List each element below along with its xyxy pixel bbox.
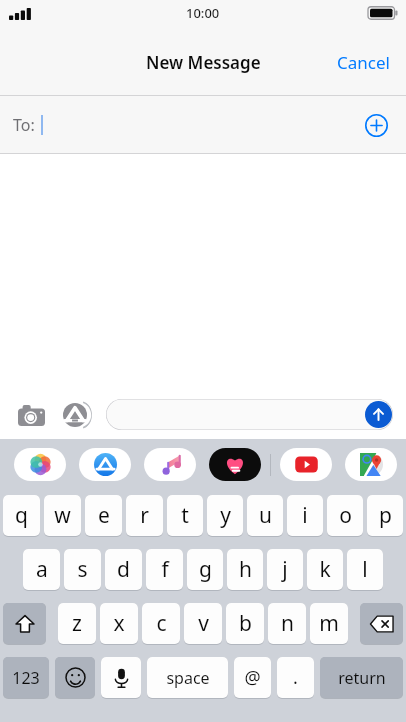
button[interactable]: r <box>126 495 163 536</box>
staticText: 10:00 <box>186 4 220 22</box>
button[interactable]: w <box>44 495 81 536</box>
button[interactable]: Digital Touch <box>209 448 261 481</box>
button[interactable]: y <box>207 495 243 536</box>
button[interactable]: App Store <box>79 448 131 481</box>
staticText: x <box>113 609 125 638</box>
staticText: r <box>140 501 149 530</box>
button[interactable]: n <box>268 603 306 644</box>
button[interactable]: space <box>147 657 228 698</box>
staticText: t <box>181 501 189 530</box>
button[interactable]: o <box>327 495 363 536</box>
staticText: space <box>166 667 210 689</box>
staticText: h <box>239 555 252 584</box>
button[interactable]: t <box>167 495 203 536</box>
staticText: e <box>98 501 110 530</box>
button[interactable]: Add contact <box>359 108 393 142</box>
button[interactable]: YouTube <box>280 448 332 481</box>
button[interactable]: s <box>64 549 101 590</box>
staticText: w <box>54 501 71 530</box>
button[interactable]: b <box>226 603 264 644</box>
staticText: b <box>239 609 252 638</box>
button[interactable]: m <box>310 603 348 644</box>
staticText: m <box>319 609 339 638</box>
button[interactable]: return <box>320 657 403 698</box>
button[interactable]: g <box>187 549 223 590</box>
staticText: l <box>362 555 368 584</box>
button[interactable]: Emoji <box>55 657 95 698</box>
staticText: . <box>293 665 298 690</box>
button[interactable]: Cancel <box>321 43 406 82</box>
button[interactable]: Send <box>365 401 392 428</box>
staticText: p <box>379 501 392 530</box>
button[interactable]: z <box>58 603 96 644</box>
button[interactable]: l <box>347 549 383 590</box>
button[interactable]: at sign <box>234 657 271 698</box>
button[interactable]: x <box>100 603 138 644</box>
button[interactable]: q <box>3 495 40 536</box>
button[interactable]: Numbers <box>3 657 49 698</box>
button[interactable]: h <box>227 549 263 590</box>
button[interactable]: c <box>142 603 180 644</box>
staticText: z <box>72 609 82 638</box>
staticText: c <box>156 609 167 638</box>
button[interactable]: j <box>267 549 303 590</box>
staticText: o <box>339 501 352 530</box>
staticText: q <box>15 501 28 530</box>
staticText: 123 <box>12 667 40 689</box>
staticText: return <box>338 667 386 689</box>
button[interactable]: i <box>287 495 323 536</box>
button[interactable]: u <box>247 495 283 536</box>
button[interactable]: p <box>367 495 403 536</box>
staticText: a <box>36 555 48 584</box>
staticText: Cancel <box>337 51 390 74</box>
button[interactable]: f <box>146 549 183 590</box>
staticText: d <box>117 555 130 584</box>
button[interactable]: Dictate <box>101 657 141 698</box>
staticText: s <box>77 555 88 584</box>
staticText: v <box>198 609 209 638</box>
staticText: j <box>282 555 288 584</box>
button[interactable]: v <box>184 603 222 644</box>
button[interactable]: Photos <box>14 448 66 481</box>
button[interactable]: a <box>23 549 60 590</box>
staticText: g <box>199 555 212 584</box>
button[interactable]: Maps <box>345 448 397 481</box>
button[interactable]: To: <box>0 96 406 153</box>
staticText: To: <box>13 114 35 136</box>
staticText: u <box>259 501 272 530</box>
staticText: n <box>281 609 294 638</box>
button[interactable]: Delete <box>360 603 403 644</box>
staticText: y <box>220 501 231 530</box>
button[interactable]: d <box>105 549 142 590</box>
button[interactable]: e <box>85 495 122 536</box>
staticText: @ <box>244 665 261 690</box>
button[interactable]: Send <box>106 399 393 430</box>
button[interactable]: Music <box>144 448 196 481</box>
staticText: i <box>302 501 308 530</box>
staticText: k <box>319 555 331 584</box>
button[interactable]: Shift <box>3 603 46 644</box>
button[interactable]: k <box>307 549 343 590</box>
staticText: New Message <box>146 51 261 74</box>
staticText: f <box>161 555 169 584</box>
button[interactable]: Camera <box>14 398 48 432</box>
button[interactable]: Apps <box>58 398 92 432</box>
button[interactable]: period <box>277 657 314 698</box>
